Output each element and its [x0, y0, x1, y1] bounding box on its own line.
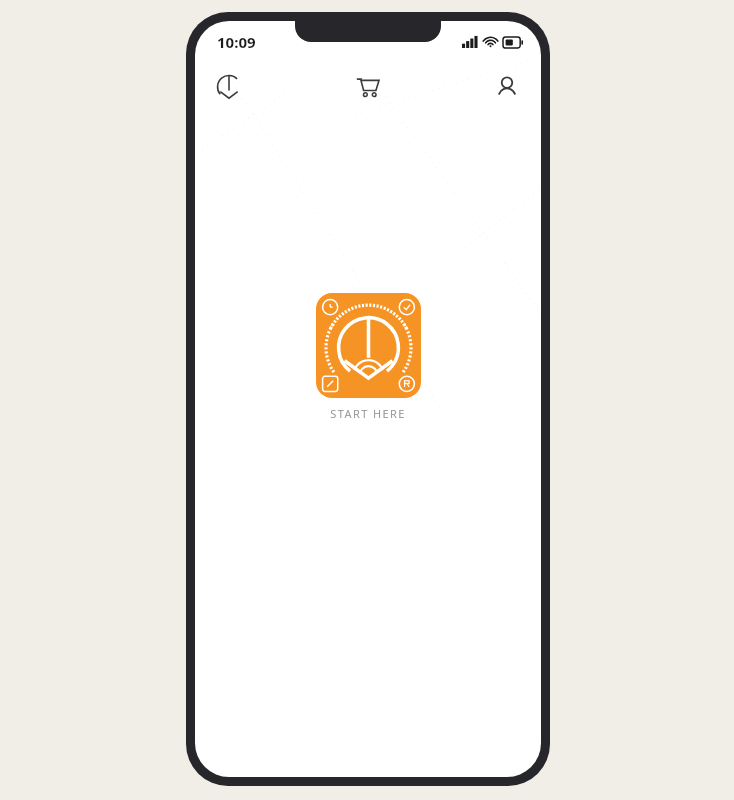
button[interactable]: Start here WrapTag blockchain NFT tag — [316, 293, 421, 398]
button[interactable]: Account — [487, 67, 527, 107]
button[interactable]: Cart — [347, 66, 389, 108]
button[interactable]: WrapTag home — [209, 67, 249, 107]
staticText: 10:09 — [217, 32, 256, 52]
staticText: START HERE — [330, 406, 406, 421]
